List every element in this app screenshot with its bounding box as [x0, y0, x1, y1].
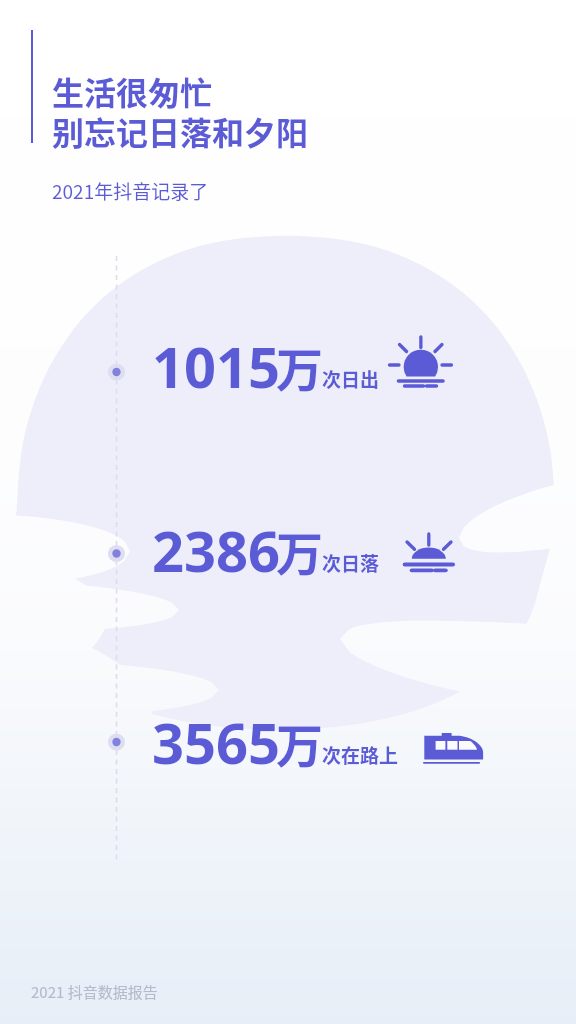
staticText: 2021 抖音数据报告: [31, 981, 158, 1003]
button[interactable]: 2386: [152, 512, 386, 588]
staticText: 1015: [152, 328, 281, 404]
staticText: 2386: [152, 512, 281, 588]
staticText: 3565: [152, 704, 281, 780]
staticText: 次日落: [322, 549, 380, 577]
staticText: 万: [276, 516, 323, 584]
staticText: 万: [276, 332, 323, 400]
staticText: 2021年抖音记录了: [52, 177, 209, 205]
button[interactable]: 1015: [152, 328, 386, 404]
staticText: 次在路上: [322, 741, 399, 769]
staticText: 万: [276, 708, 323, 776]
staticText: 次日出: [322, 365, 380, 393]
staticText: 生活很匆忙: [52, 68, 213, 114]
button[interactable]: 3565: [152, 704, 405, 780]
staticText: 别忘记日落和夕阳: [52, 108, 309, 154]
